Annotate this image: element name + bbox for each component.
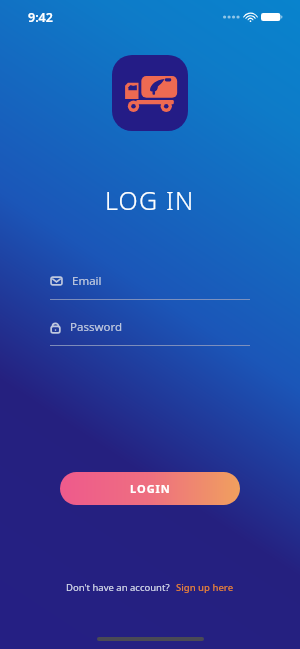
other: Password	[50, 321, 61, 334]
button[interactable]: Sign up here	[176, 581, 234, 594]
button[interactable]: LOGIN	[60, 472, 240, 505]
staticText: Password	[70, 319, 123, 335]
button[interactable]: Password	[50, 314, 250, 346]
staticText: LOG IN	[105, 183, 195, 217]
staticText: LOGIN	[130, 481, 171, 496]
other: Email	[50, 276, 63, 286]
staticText: Sign up here	[176, 581, 234, 594]
staticText: 9:42	[28, 9, 53, 26]
other: Fuel truck logo	[122, 72, 178, 114]
staticText: Email	[72, 273, 102, 289]
button[interactable]: Email	[50, 268, 250, 300]
staticText: Don't have an account?	[66, 581, 170, 594]
